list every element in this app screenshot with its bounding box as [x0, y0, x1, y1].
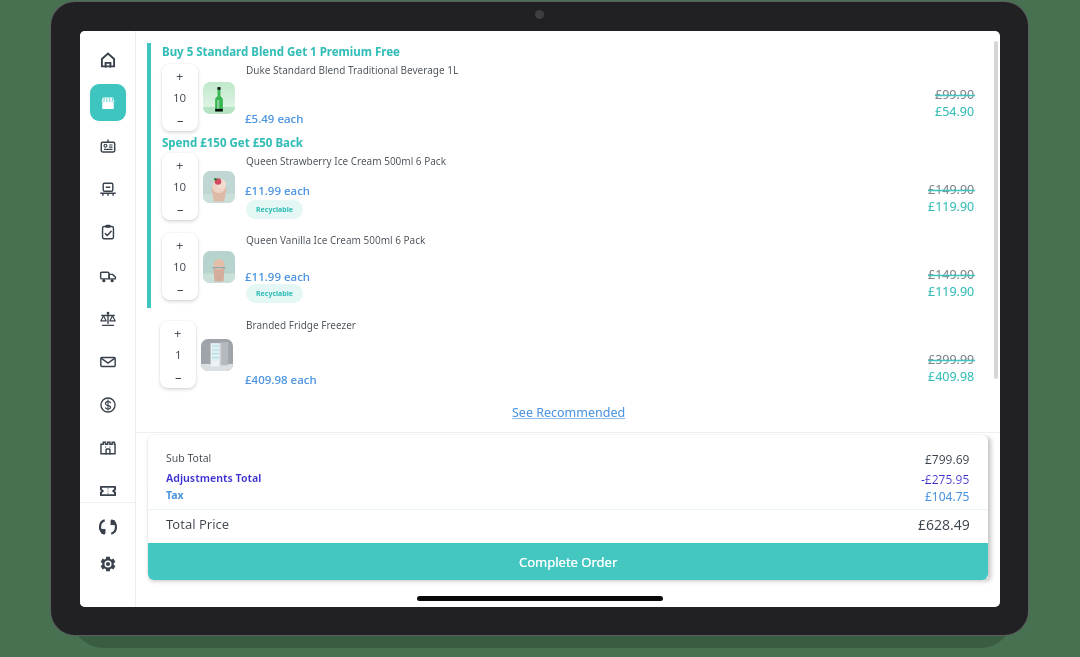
- staticText: -£275.95: [921, 471, 970, 487]
- staticText: Spend £150 Get £50 Back: [162, 135, 304, 151]
- button[interactable]: Increase quantity: [162, 64, 198, 131]
- button[interactable]: Payments: [90, 386, 126, 423]
- button[interactable]: Home: [90, 41, 126, 78]
- staticText: £628.49: [918, 515, 970, 534]
- button[interactable]: Deliveries: [90, 257, 126, 294]
- staticText: Recyclable: [256, 205, 293, 215]
- staticText: £149.90: [928, 181, 975, 198]
- staticText: +: [176, 156, 184, 174]
- staticText: 10: [173, 259, 187, 275]
- button[interactable]: Increase quantity: [162, 233, 198, 300]
- button[interactable]: Tasks: [90, 213, 126, 250]
- button[interactable]: Recyclable: [246, 284, 303, 303]
- staticText: Total Price: [166, 515, 230, 533]
- staticText: Queen Vanilla Ice Cream 500ml 6 Pack: [246, 233, 426, 247]
- staticText: £99.90: [935, 86, 975, 103]
- button[interactable]: Customers: [90, 127, 126, 164]
- button[interactable]: Inventory: [90, 170, 126, 207]
- staticText: Branded Fridge Freezer: [246, 318, 356, 332]
- staticText: £104.75: [925, 488, 970, 504]
- staticText: £409.98 each: [245, 372, 317, 388]
- staticText: Duke Standard Blend Traditional Beverage…: [246, 63, 459, 77]
- staticText: –: [177, 200, 184, 218]
- button[interactable]: Increase quantity: [162, 153, 198, 177]
- button[interactable]: Increase quantity: [162, 64, 198, 88]
- button[interactable]: Complete Order: [148, 543, 988, 580]
- staticText: £409.98: [928, 368, 975, 385]
- staticText: £11.99 each: [245, 183, 311, 199]
- button[interactable]: Decrease quantity: [162, 197, 198, 220]
- staticText: £11.99 each: [245, 269, 311, 285]
- staticText: £119.90: [928, 198, 975, 215]
- button[interactable]: Increase quantity: [162, 233, 198, 257]
- button[interactable]: Sync: [90, 508, 126, 545]
- staticText: £119.90: [928, 283, 975, 300]
- staticText: £799.69: [925, 451, 970, 467]
- staticText: Complete Order: [519, 553, 618, 571]
- button[interactable]: Settings: [90, 545, 126, 582]
- staticText: 10: [173, 179, 187, 195]
- button[interactable]: Decrease quantity: [162, 108, 198, 131]
- staticText: –: [177, 280, 184, 298]
- staticText: +: [174, 324, 182, 342]
- staticText: Tax: [166, 488, 184, 502]
- button[interactable]: Increase quantity: [160, 321, 196, 345]
- button[interactable]: Messages: [90, 343, 126, 380]
- button[interactable]: Warehouse: [90, 429, 126, 466]
- button[interactable]: Decrease quantity: [160, 365, 196, 388]
- staticText: 10: [173, 90, 187, 106]
- button[interactable]: Increase quantity: [160, 321, 196, 388]
- staticText: 1: [175, 347, 182, 363]
- staticText: Adjustments Total: [166, 471, 262, 485]
- staticText: +: [176, 67, 184, 85]
- staticText: £399.99: [928, 351, 975, 368]
- button[interactable]: Compare: [90, 300, 126, 337]
- staticText: Sub Total: [166, 451, 212, 465]
- staticText: £5.49 each: [245, 111, 304, 127]
- staticText: –: [177, 111, 184, 129]
- staticText: £54.90: [935, 103, 975, 120]
- button[interactable]: Store: [90, 84, 126, 121]
- staticText: Recyclable: [256, 289, 293, 299]
- staticText: Queen Strawberry Ice Cream 500ml 6 Pack: [246, 154, 446, 168]
- staticText: Buy 5 Standard Blend Get 1 Premium Free: [162, 44, 400, 60]
- staticText: £149.90: [928, 266, 975, 283]
- button[interactable]: Vouchers: [90, 472, 126, 509]
- staticText: –: [175, 368, 182, 386]
- staticText: +: [176, 236, 184, 254]
- button[interactable]: Increase quantity: [162, 153, 198, 220]
- button[interactable]: Recyclable: [246, 200, 303, 219]
- button[interactable]: See Recommended: [510, 402, 628, 423]
- button[interactable]: Decrease quantity: [162, 277, 198, 300]
- staticText: See Recommended: [512, 404, 626, 421]
